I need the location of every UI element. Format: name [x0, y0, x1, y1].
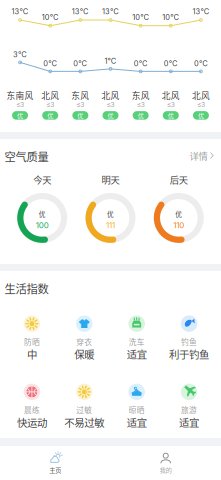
button[interactable]: 13℃	[5, 0, 35, 132]
staticText: 东南风	[7, 89, 34, 101]
staticText: ≤3	[106, 101, 114, 109]
staticText: 过敏	[76, 404, 92, 415]
staticText: 优	[77, 111, 83, 120]
staticText: 北风	[162, 89, 180, 101]
staticText: ≤3	[76, 101, 84, 109]
staticText: 穿衣	[76, 336, 92, 347]
staticText: 北风	[41, 89, 59, 101]
button[interactable]: 今天	[8, 173, 76, 242]
staticText: 13℃	[72, 7, 89, 16]
button[interactable]: 旅游	[163, 384, 215, 429]
staticText: 主页	[49, 465, 61, 474]
staticText: 明天	[101, 173, 119, 186]
staticText: ≤3	[167, 101, 175, 109]
staticText: 优	[175, 209, 182, 219]
staticText: 13℃	[102, 7, 119, 16]
button[interactable]: 洗车	[110, 316, 163, 361]
staticText: 旅游	[181, 404, 197, 415]
button[interactable]: 13℃	[65, 0, 95, 132]
staticText: ≤3	[16, 101, 24, 109]
staticText: 优	[198, 111, 204, 120]
staticText: 防晒	[24, 336, 40, 347]
staticText: 适宜	[179, 415, 199, 430]
staticText: 后天	[170, 173, 188, 186]
staticText: 0℃	[194, 59, 208, 68]
staticText: 3℃	[13, 50, 27, 59]
staticText: 13℃	[12, 7, 29, 16]
staticText: ≤3	[46, 101, 54, 109]
staticText: 利于钓鱼	[169, 346, 209, 362]
button[interactable]: 过敏	[58, 384, 110, 429]
staticText: 洗车	[129, 336, 145, 347]
button[interactable]: 后天	[145, 173, 213, 242]
staticText: 保暖	[74, 346, 94, 362]
staticText: 优	[39, 209, 46, 219]
staticText: 优	[168, 111, 174, 120]
staticText: 10℃	[42, 13, 59, 22]
staticText: 优	[107, 111, 113, 120]
staticText: 东风	[71, 89, 89, 101]
button[interactable]: 明天	[76, 173, 145, 242]
button[interactable]: 13℃	[95, 0, 125, 132]
button[interactable]: 13℃	[186, 0, 216, 132]
staticText: 晾晒	[129, 404, 145, 415]
staticText: 111	[106, 220, 115, 230]
staticText: 10℃	[162, 13, 179, 22]
button[interactable]: 我的	[110, 446, 221, 480]
staticText: 适宜	[127, 415, 147, 430]
button[interactable]: 晾晒	[110, 384, 163, 429]
staticText: 晨练	[24, 404, 40, 415]
button[interactable]: 穿衣	[58, 316, 110, 361]
staticText: 东风	[132, 89, 150, 101]
button[interactable]: 晨练	[6, 384, 58, 429]
staticText: 优	[107, 209, 114, 219]
staticText: 生活指数	[4, 280, 48, 297]
staticText: 0℃	[73, 59, 87, 68]
button[interactable]: 防晒	[6, 316, 58, 361]
staticText: 适宜	[127, 346, 147, 362]
staticText: 100	[36, 220, 49, 230]
staticText: 0℃	[134, 59, 148, 68]
staticText: 快运动	[17, 415, 47, 430]
staticText: 0℃	[43, 59, 57, 68]
button[interactable]: 钓鱼	[163, 316, 215, 361]
staticText: 钓鱼	[181, 336, 197, 347]
staticText: 优	[17, 111, 23, 120]
button[interactable]: 10℃	[156, 0, 186, 132]
button[interactable]: 主页	[0, 446, 110, 480]
staticText: 北风	[101, 89, 119, 101]
staticText: 110	[173, 220, 184, 230]
button[interactable]: 详情	[189, 149, 214, 162]
staticText: 10℃	[132, 13, 149, 22]
staticText: ≤3	[137, 101, 145, 109]
staticText: 详情	[189, 149, 207, 162]
staticText: 优	[47, 111, 53, 120]
staticText: 今天	[33, 173, 51, 186]
staticText: 不易过敏	[64, 415, 104, 430]
staticText: ≤3	[197, 101, 205, 109]
staticText: 中	[27, 346, 37, 362]
button[interactable]: 10℃	[35, 0, 65, 132]
staticText: 1℃	[104, 56, 116, 65]
staticText: 优	[138, 111, 144, 120]
button[interactable]: 10℃	[126, 0, 156, 132]
staticText: 空气质量	[4, 148, 48, 164]
staticText: 北风	[192, 89, 210, 101]
staticText: 13℃	[192, 7, 209, 16]
staticText: 我的	[160, 465, 172, 474]
staticText: 0℃	[164, 59, 178, 68]
